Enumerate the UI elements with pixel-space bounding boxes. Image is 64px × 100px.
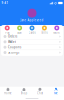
button[interactable]: Settings xyxy=(1,50,63,55)
button[interactable]: Cards xyxy=(26,25,38,34)
button[interactable]: Bills xyxy=(38,25,51,34)
staticText: Home xyxy=(4,91,12,95)
staticText: More xyxy=(53,31,60,34)
staticText: Chat xyxy=(37,91,43,95)
button[interactable]: Chat xyxy=(32,86,48,95)
staticText: 9:41 xyxy=(1,1,8,5)
staticText: Pay xyxy=(5,31,9,34)
staticText: Shop xyxy=(20,91,27,95)
button[interactable]: Shop xyxy=(16,86,32,95)
staticText: Jane Appleseed xyxy=(20,18,43,22)
button[interactable]: More xyxy=(51,25,63,34)
button[interactable]: Home xyxy=(0,86,16,95)
button[interactable]: Wallet xyxy=(1,39,63,44)
staticText: Coupons xyxy=(8,45,21,49)
button[interactable]: Scan xyxy=(13,25,26,34)
staticText: Orders xyxy=(8,35,17,38)
button[interactable]: Orders xyxy=(1,34,63,39)
staticText: Cards xyxy=(28,31,35,34)
button[interactable]: Pay xyxy=(1,25,13,34)
staticText: Settings xyxy=(8,51,19,54)
button[interactable]: Me xyxy=(48,86,64,95)
staticText: Scan xyxy=(17,31,22,34)
staticText: Me xyxy=(54,91,58,95)
staticText: Wallet xyxy=(8,40,16,44)
button[interactable]: Coupons xyxy=(1,45,63,50)
staticText: Bills xyxy=(41,31,47,34)
